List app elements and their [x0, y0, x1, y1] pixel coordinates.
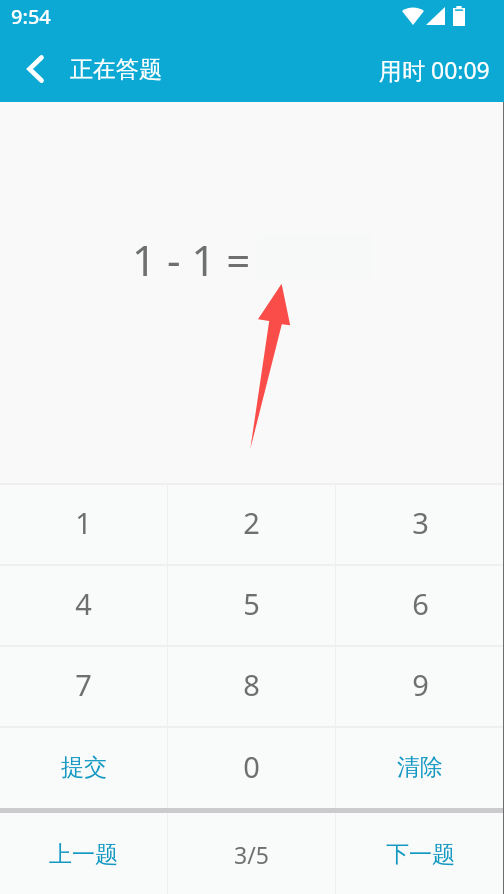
- button[interactable]: 提交: [0, 728, 167, 808]
- button[interactable]: 2: [168, 485, 335, 564]
- button[interactable]: 清除: [336, 728, 504, 808]
- staticText: 清除: [397, 753, 443, 782]
- staticText: 1: [75, 503, 92, 542]
- staticText: 上一题: [49, 840, 118, 869]
- staticText: 0: [243, 747, 260, 786]
- button[interactable]: 上一题: [0, 813, 167, 894]
- button[interactable]: Back: [5, 36, 65, 102]
- staticText: 2: [243, 503, 260, 542]
- button[interactable]: 3: [336, 485, 504, 564]
- staticText: 9:54: [11, 3, 51, 30]
- staticText: 6: [412, 584, 429, 623]
- button[interactable]: 0: [168, 728, 335, 808]
- staticText: 3: [412, 503, 429, 542]
- button[interactable]: 7: [0, 647, 167, 726]
- staticText: 8: [243, 665, 260, 704]
- staticText: 正在答题: [70, 55, 162, 84]
- button[interactable]: 8: [168, 647, 335, 726]
- button[interactable]: 4: [0, 566, 167, 645]
- staticText: 4: [75, 584, 92, 623]
- staticText: 5: [243, 584, 260, 623]
- button[interactable]: 3/5: [168, 813, 335, 894]
- staticText: 下一题: [386, 840, 455, 869]
- staticText: 7: [75, 665, 92, 704]
- button[interactable]: 6: [336, 566, 504, 645]
- staticText: 9: [412, 665, 429, 704]
- button[interactable]: 1: [0, 485, 167, 564]
- staticText: 提交: [61, 753, 107, 782]
- staticText: 1 - 1 =: [132, 231, 251, 288]
- button[interactable]: 5: [168, 566, 335, 645]
- staticText: 3/5: [234, 839, 269, 870]
- button[interactable]: 下一题: [336, 813, 504, 894]
- button[interactable]: 9: [336, 647, 504, 726]
- staticText: 用时 00:09: [379, 54, 490, 85]
